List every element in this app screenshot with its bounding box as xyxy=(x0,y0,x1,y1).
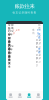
staticText: -128.00 xyxy=(36,42,41,52)
staticText: 餐饮美食 xyxy=(8,52,11,65)
staticText: -128.00 xyxy=(36,34,41,45)
button[interactable]: Tab xyxy=(34,91,43,100)
staticText: 餐饮美食 xyxy=(8,40,11,53)
staticText: 查看 xyxy=(38,47,41,54)
staticText: 餐饮美食 xyxy=(8,55,11,68)
staticText: 餐饮美食 xyxy=(8,48,11,61)
staticText: -128.00 xyxy=(36,56,41,67)
staticText: 查看 xyxy=(38,33,41,39)
staticText: 餐饮美食 xyxy=(8,33,11,46)
staticText: 收入 xyxy=(8,28,11,35)
staticText: -128.00 xyxy=(36,38,41,49)
staticText: -128.00 xyxy=(36,49,41,60)
staticText: 860 xyxy=(37,28,41,35)
staticText: 2024年11月 xyxy=(8,29,14,43)
staticText: 账款往来 xyxy=(14,3,34,10)
button[interactable]: Tab xyxy=(15,91,24,100)
staticText: 餐饮美食 xyxy=(8,37,11,50)
button[interactable]: Tab xyxy=(24,91,34,100)
staticText: 筛选 xyxy=(38,23,41,30)
button[interactable]: Tab xyxy=(6,91,15,100)
staticText: 收支记录随时查看 xyxy=(12,11,36,14)
staticText: 支出 xyxy=(32,28,35,35)
staticText: 2024年10月 xyxy=(8,44,14,58)
staticText: -128.00 xyxy=(36,53,41,63)
staticText: 1,280 xyxy=(13,28,20,35)
staticText: 全部账单 xyxy=(8,23,14,30)
